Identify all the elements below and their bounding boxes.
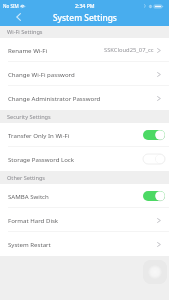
button[interactable]: On (143, 130, 165, 140)
staticText: Rename Wi-Fi (8, 46, 48, 54)
staticText: Transfer Only In Wi-Fi (8, 131, 70, 139)
button[interactable]: Transfer Only In Wi-Fi (0, 123, 169, 147)
button[interactable]: SAMBA Switch (0, 184, 169, 208)
button[interactable]: Back (12, 13, 24, 25)
button[interactable]: System Restart (0, 232, 169, 256)
button[interactable]: Format Hard Disk (0, 208, 169, 232)
staticText: Change Wi-Fi password (8, 70, 75, 78)
staticText: System Settings (53, 12, 117, 23)
staticText: No SIM (3, 3, 19, 9)
staticText: Change Administrator Password (8, 94, 101, 102)
button[interactable]: Storage Password Lock (0, 147, 169, 171)
staticText: Format Hard Disk (8, 216, 59, 224)
staticText: SAMBA Switch (8, 192, 49, 200)
staticText: Wi-Fi Settings (7, 28, 43, 36)
button[interactable]: Assistive Touch (143, 260, 167, 284)
button[interactable]: Change Administrator Password (0, 86, 169, 110)
button[interactable]: Rename Wi-Fi (0, 38, 169, 62)
staticText: System Restart (8, 240, 51, 248)
staticText: Security Settings (7, 113, 51, 121)
staticText: 2:34 PM (75, 2, 95, 9)
staticText: Other Settings (7, 174, 46, 182)
button[interactable]: On (143, 191, 165, 201)
button[interactable]: Change Wi-Fi password (0, 62, 169, 86)
staticText: SSKCloud25_07_cc (104, 46, 154, 54)
button[interactable]: Off (143, 154, 165, 164)
staticText: Storage Password Lock (8, 155, 75, 163)
